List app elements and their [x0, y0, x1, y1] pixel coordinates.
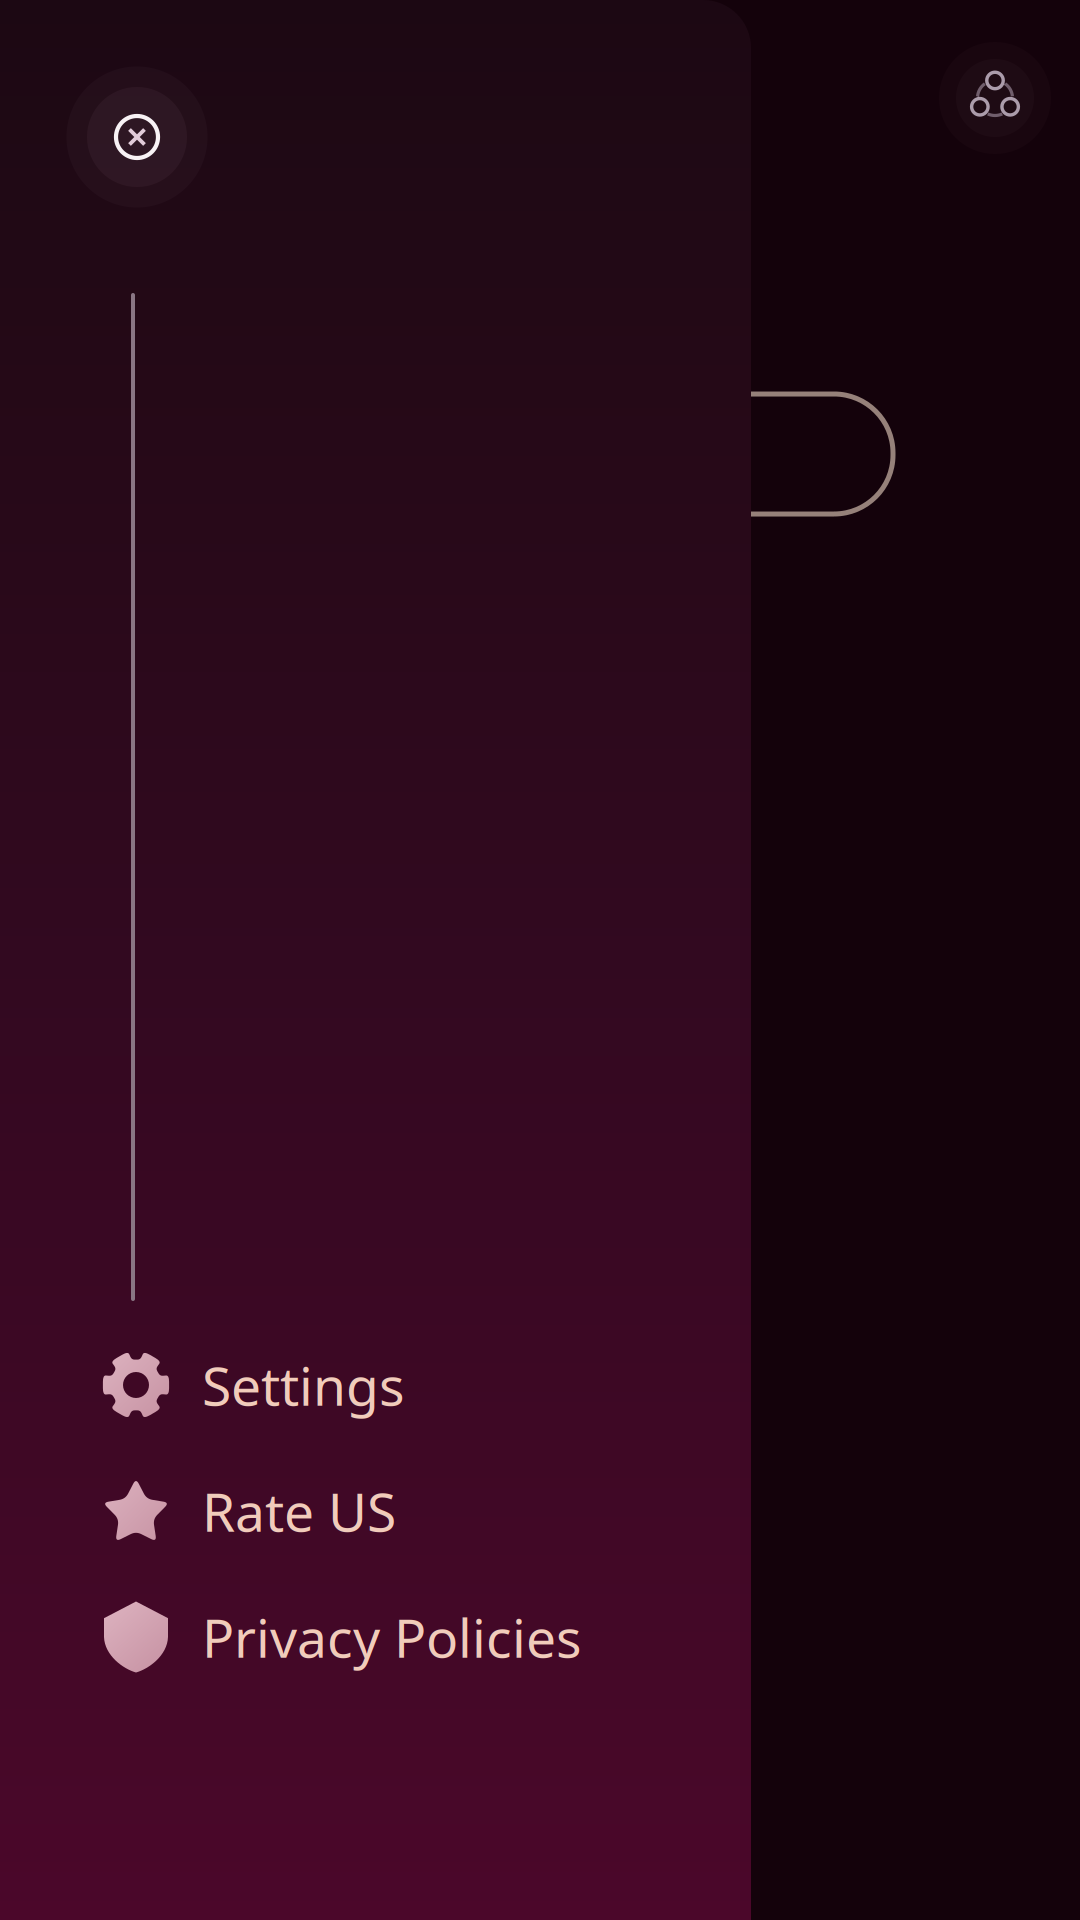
button[interactable]: Close menu [53, 53, 221, 221]
button[interactable]: Privacy Policies [98, 1582, 678, 1692]
button[interactable]: Rate US [98, 1456, 678, 1566]
button[interactable]: Settings [98, 1330, 678, 1440]
staticText: Settings [202, 1350, 405, 1420]
button[interactable]: Share [925, 28, 1065, 168]
staticText: Rate US [202, 1476, 396, 1546]
staticText: Privacy Policies [202, 1602, 582, 1672]
